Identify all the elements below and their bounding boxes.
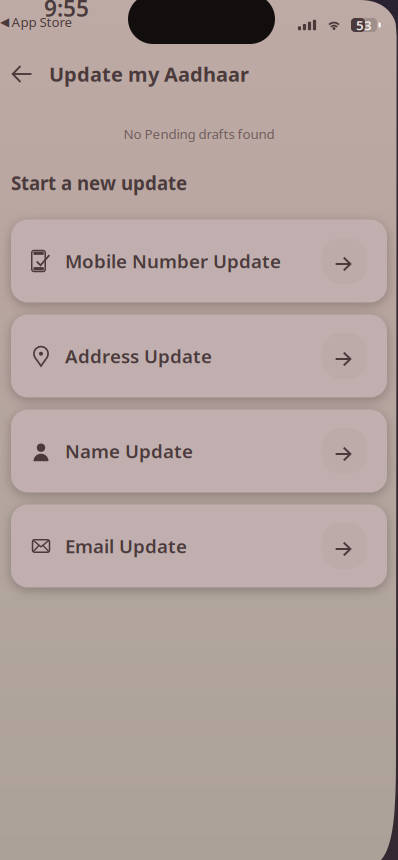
button[interactable]: Name Update [11,409,387,492]
button[interactable]: Email Update [11,504,387,587]
staticText: Update my Aadhaar [49,61,249,87]
button[interactable]: Address Update [11,314,387,397]
staticText: Start a new update [11,171,187,195]
button[interactable]: Mobile Number Update [11,219,387,302]
staticText: ◀ [0,15,9,29]
staticText: Name Update [65,439,193,463]
staticText: App Store [11,13,72,31]
staticText: Address Update [65,344,212,368]
staticText: No Pending drafts found [123,125,274,143]
staticText: Email Update [65,534,187,558]
staticText: Mobile Number Update [65,249,281,273]
staticText: 9:55 [44,0,89,23]
staticText: 53 [356,16,372,34]
button[interactable]: Back [3,55,41,93]
